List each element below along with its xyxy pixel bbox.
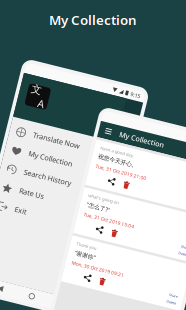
staticText: 祝您今天开心。 <box>26 127 138 147</box>
staticText: My Collection <box>76 239 186 266</box>
button[interactable]: Delete <box>112 184 130 206</box>
staticText: My Collection <box>68 50 186 76</box>
button[interactable]: what's going on <box>10 229 186 310</box>
staticText: 文 <box>40 58 69 94</box>
button[interactable]: Search History <box>10 279 186 310</box>
button[interactable]: Menu <box>26 52 48 74</box>
button[interactable]: Translate Now <box>10 173 186 226</box>
staticText: Search History <box>76 292 186 310</box>
staticText: Have a good day. <box>26 104 122 120</box>
staticText: My Collection <box>49 11 137 29</box>
staticText: "怎么了?" <box>26 263 95 284</box>
staticText: what's going on <box>26 240 113 256</box>
staticText: Translate Now <box>76 186 186 213</box>
button[interactable]: Have a good day. <box>10 93 186 222</box>
staticText: Tue, 31 Oct 2019 15:04 <box>26 293 170 310</box>
button[interactable]: Share <box>68 184 90 206</box>
staticText: Tue, 31 Oct 2019 21:00 <box>26 156 170 173</box>
button[interactable]: My Collection <box>10 226 186 279</box>
